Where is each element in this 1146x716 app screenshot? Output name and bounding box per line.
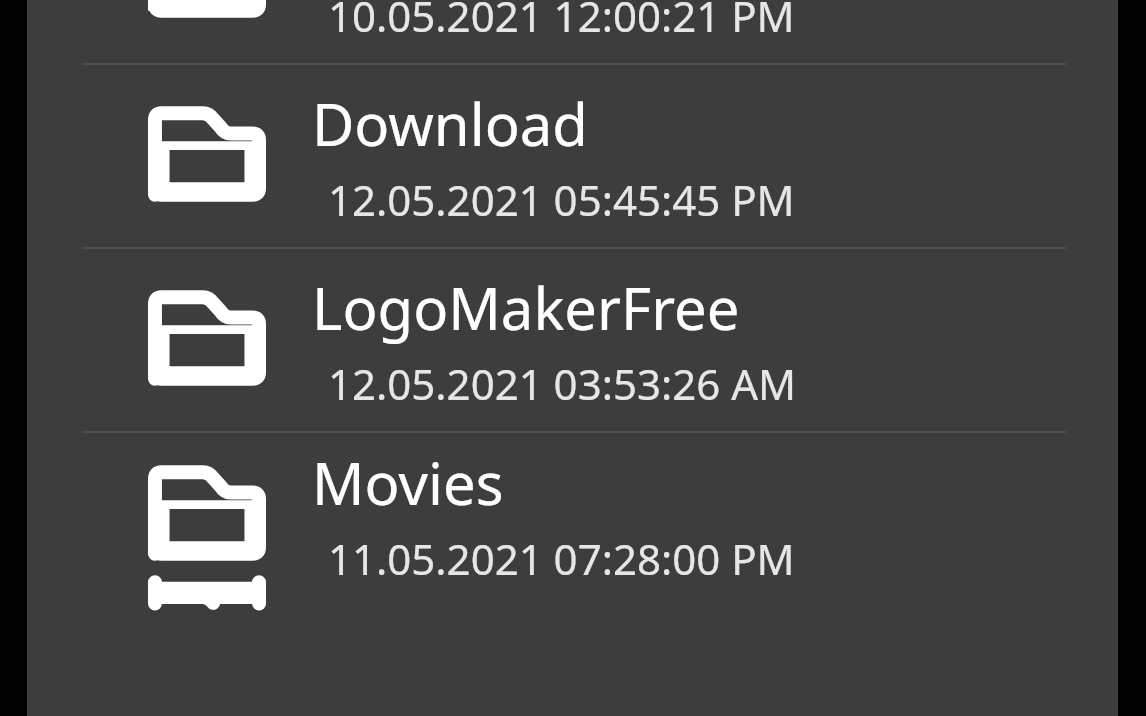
- staticText: 10.05.2021 12:00:21 PM: [328, 0, 795, 44]
- other: Folder: [148, 468, 266, 562]
- staticText: 12.05.2021 05:45:45 PM: [328, 171, 795, 228]
- staticText: LogoMakerFree: [312, 268, 740, 347]
- button[interactable]: Folder: [27, 65, 1118, 247]
- staticText: 11.05.2021 07:28:00 PM: [328, 530, 795, 587]
- other: Folder: [148, 293, 266, 387]
- button[interactable]: Folder: [27, 433, 1118, 597]
- other: Folder: [148, 0, 266, 19]
- other: Folder: [148, 109, 266, 203]
- button[interactable]: Folder: [27, 0, 1118, 63]
- staticText: 12.05.2021 03:53:26 AM: [328, 355, 797, 412]
- staticText: Movies: [312, 443, 504, 522]
- button[interactable]: Folder: [27, 249, 1118, 431]
- staticText: Download: [312, 84, 588, 163]
